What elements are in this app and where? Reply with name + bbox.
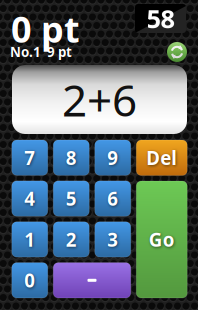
button[interactable]: 7 bbox=[12, 140, 48, 175]
button[interactable]: 6 bbox=[95, 181, 131, 216]
staticText: 58 bbox=[146, 2, 174, 35]
staticText: 3 bbox=[107, 227, 118, 252]
button[interactable]: 2 bbox=[53, 222, 89, 257]
staticText: 0 pt bbox=[11, 5, 80, 53]
staticText: 8 bbox=[66, 145, 77, 170]
staticText: 2+6 bbox=[62, 70, 137, 129]
button[interactable]: 3 bbox=[95, 222, 131, 257]
button[interactable]: Go bbox=[136, 181, 187, 298]
staticText: No.1 9 pt bbox=[10, 43, 72, 61]
button[interactable]: 0 bbox=[12, 263, 48, 298]
staticText: 9 bbox=[107, 145, 118, 170]
button[interactable]: 1 bbox=[12, 222, 48, 257]
button[interactable]: 8 bbox=[53, 140, 89, 175]
button[interactable]: 4 bbox=[12, 181, 48, 216]
button[interactable]: Minus bbox=[53, 263, 131, 298]
staticText: 5 bbox=[66, 186, 77, 211]
button[interactable]: Restart bbox=[167, 42, 187, 62]
staticText: Del bbox=[146, 145, 177, 170]
button[interactable]: 5 bbox=[53, 181, 89, 216]
staticText: 2 bbox=[66, 227, 77, 252]
button[interactable]: Del bbox=[136, 140, 187, 175]
button[interactable]: 9 bbox=[95, 140, 131, 175]
staticText: 1 bbox=[24, 227, 35, 252]
staticText: 4 bbox=[24, 186, 35, 211]
staticText: 0 bbox=[24, 268, 35, 293]
staticText: 7 bbox=[24, 145, 35, 170]
staticText: 6 bbox=[107, 186, 118, 211]
staticText: Go bbox=[149, 227, 175, 252]
